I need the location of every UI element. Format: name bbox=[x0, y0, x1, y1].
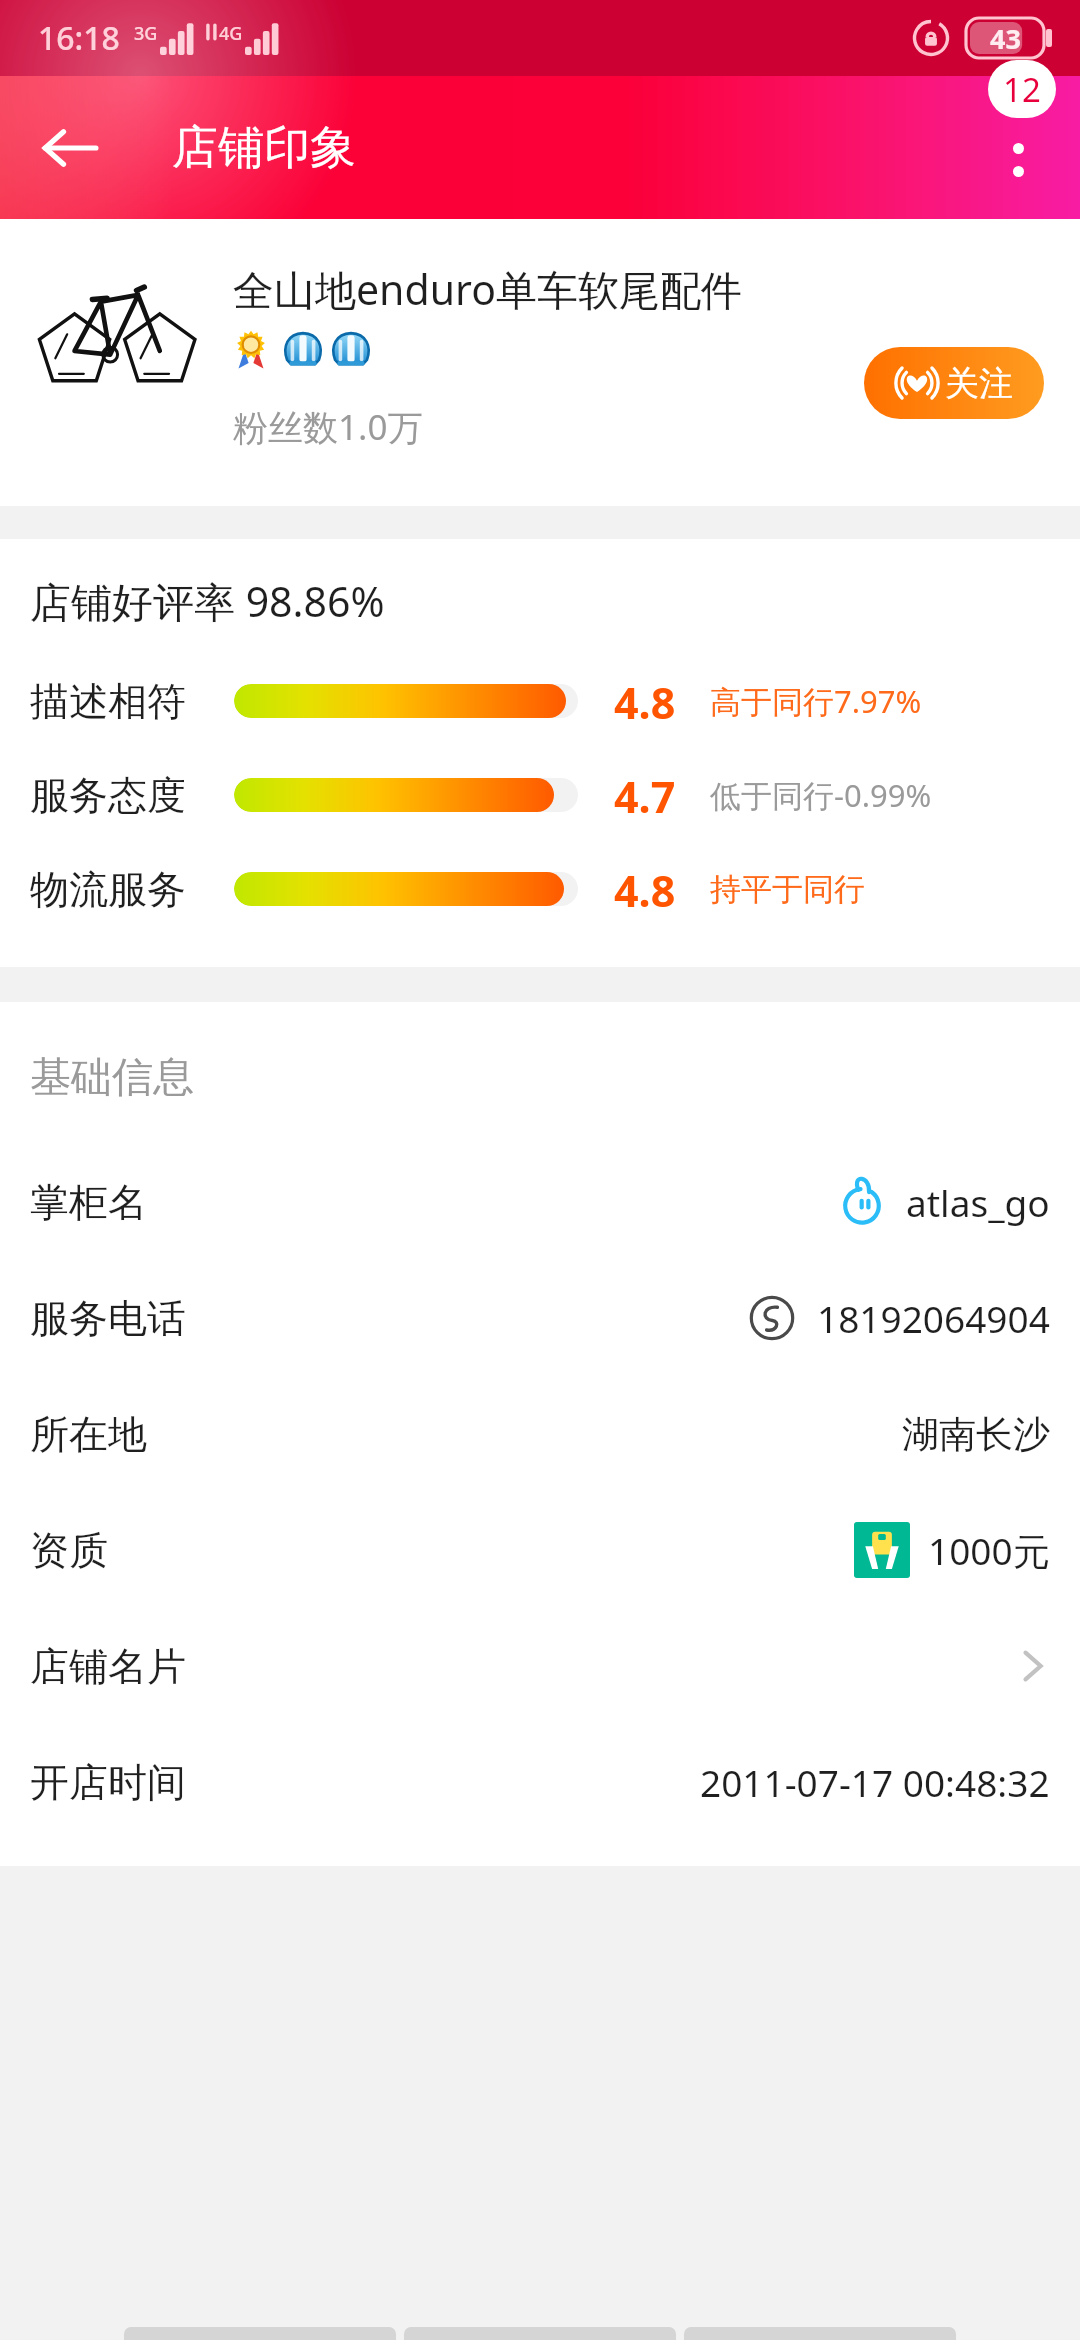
staticText: 店铺印象 bbox=[172, 119, 356, 177]
staticText: atlas_go bbox=[906, 1177, 1050, 1227]
staticText: 43 bbox=[990, 20, 1021, 57]
staticText: 全山地enduro单车软尾配件 bbox=[233, 261, 742, 317]
staticText: 低于同行-0.99% bbox=[710, 774, 932, 816]
button[interactable]: 店铺名片 bbox=[0, 1608, 1080, 1724]
button[interactable]: 开店时间 bbox=[0, 1724, 1080, 1840]
button[interactable]: 全山地enduro单车软尾配件 bbox=[0, 219, 1080, 506]
staticText: 2011-07-17 00:48:32 bbox=[700, 1757, 1050, 1807]
staticText: 1000元 bbox=[928, 1525, 1050, 1576]
staticText: 持平于同行 bbox=[710, 870, 865, 909]
other: Rotation lock bbox=[912, 19, 950, 57]
staticText: 物流服务 bbox=[30, 865, 202, 914]
staticText: 12 bbox=[1003, 67, 1041, 112]
staticText: 服务态度 bbox=[30, 771, 202, 820]
button[interactable]: 服务电话 bbox=[0, 1260, 1080, 1376]
button[interactable]: More options bbox=[968, 98, 1068, 198]
staticText: 店铺好评率 98.86% bbox=[30, 573, 385, 629]
staticText: 所在地 bbox=[30, 1410, 147, 1459]
button[interactable]: 掌柜名 bbox=[0, 1144, 1080, 1260]
staticText: 店铺名片 bbox=[30, 1642, 186, 1691]
staticText: 资质 bbox=[30, 1526, 108, 1575]
button[interactable]: 关注 bbox=[864, 347, 1044, 419]
staticText: 18192064904 bbox=[817, 1293, 1050, 1343]
staticText: 描述相符 bbox=[30, 677, 202, 726]
button[interactable]: 描述相符 bbox=[0, 673, 1080, 729]
staticText: 4.7 bbox=[614, 767, 696, 823]
staticText: 基础信息 bbox=[30, 1052, 194, 1104]
staticText: 16:18 bbox=[38, 16, 120, 60]
other: Open shop card bbox=[1014, 1648, 1050, 1684]
button[interactable]: Back bbox=[20, 98, 120, 198]
staticText: 粉丝数1.0万 bbox=[233, 403, 423, 451]
staticText: 湖南长沙 bbox=[902, 1411, 1050, 1458]
staticText: 4G bbox=[219, 21, 243, 46]
staticText: 开店时间 bbox=[30, 1758, 186, 1807]
button[interactable]: 物流服务 bbox=[0, 861, 1080, 917]
button[interactable]: 所在地 bbox=[0, 1376, 1080, 1492]
button[interactable]: 服务态度 bbox=[0, 767, 1080, 823]
staticText: 掌柜名 bbox=[30, 1178, 147, 1227]
staticText: 关注 bbox=[945, 362, 1013, 405]
staticText: 服务电话 bbox=[30, 1294, 186, 1343]
staticText: 高于同行7.97% bbox=[710, 680, 922, 722]
button[interactable]: 资质 bbox=[0, 1492, 1080, 1608]
staticText: 4.8 bbox=[614, 673, 696, 729]
staticText: 4.8 bbox=[614, 861, 696, 917]
staticText: 3G bbox=[134, 21, 158, 46]
